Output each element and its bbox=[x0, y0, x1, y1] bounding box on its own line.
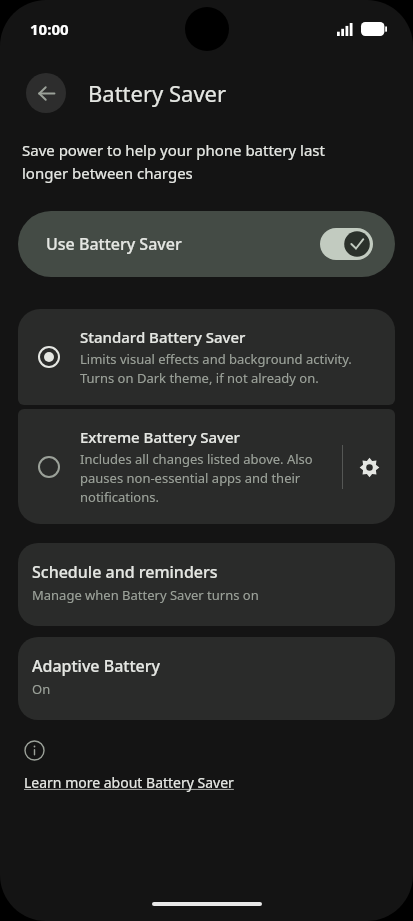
staticText: Adaptive Battery bbox=[32, 655, 160, 677]
staticText: Limits visual effects and background act… bbox=[80, 350, 373, 387]
staticText: Schedule and reminders bbox=[32, 561, 218, 583]
staticText: Manage when Battery Saver turns on bbox=[32, 586, 259, 604]
staticText: On bbox=[32, 680, 51, 698]
staticText: 10:00 bbox=[30, 19, 69, 39]
button[interactable]: Use Battery Saver bbox=[18, 211, 395, 277]
button[interactable]: Adaptive Battery bbox=[18, 637, 395, 720]
button[interactable]: Extreme Battery Saver settings bbox=[343, 441, 395, 493]
staticText: Extreme Battery Saver bbox=[80, 427, 240, 447]
staticText: Battery Saver bbox=[88, 78, 227, 108]
button[interactable]: Schedule and reminders bbox=[18, 543, 395, 626]
staticText: Standard Battery Saver bbox=[80, 327, 246, 347]
other: Information bbox=[24, 740, 45, 761]
button[interactable]: Extreme Battery Saver bbox=[18, 409, 395, 524]
button[interactable]: Back bbox=[26, 73, 66, 113]
button[interactable]: Standard Battery Saver bbox=[18, 309, 395, 405]
staticText: Includes all changes listed above. Also … bbox=[80, 450, 332, 506]
staticText: Use Battery Saver bbox=[46, 233, 320, 255]
staticText: Save power to help your phone battery la… bbox=[22, 140, 325, 183]
button[interactable]: Learn more about Battery Saver bbox=[24, 773, 234, 792]
staticText: Learn more about Battery Saver bbox=[24, 773, 234, 792]
